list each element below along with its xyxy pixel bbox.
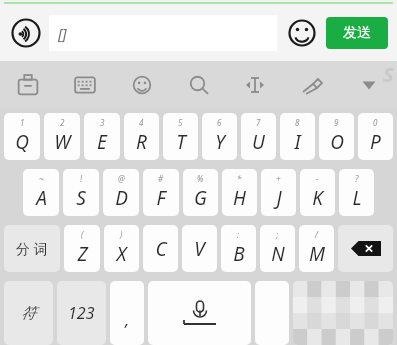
staticText: O bbox=[330, 129, 344, 155]
staticText: K bbox=[312, 185, 323, 211]
staticText: S bbox=[383, 61, 394, 88]
staticText: F bbox=[156, 185, 166, 211]
button[interactable]: Emoji bbox=[285, 16, 319, 50]
button[interactable]: Voice input bbox=[9, 16, 43, 50]
button[interactable]: Collapse keyboard bbox=[347, 65, 391, 105]
button[interactable]: Search bbox=[177, 65, 221, 105]
button[interactable]: / bbox=[299, 225, 334, 272]
staticText: 3 bbox=[100, 117, 105, 128]
staticText: 1 bbox=[20, 117, 25, 128]
staticText: 7 bbox=[256, 117, 261, 128]
button[interactable]: 8 bbox=[280, 113, 315, 160]
button[interactable]: : bbox=[221, 225, 256, 272]
button[interactable]: 9 bbox=[319, 113, 354, 160]
button[interactable]: ! bbox=[63, 169, 99, 216]
staticText: 9 bbox=[334, 117, 339, 128]
staticText: ; bbox=[276, 229, 279, 240]
button[interactable]: % bbox=[183, 169, 218, 216]
button[interactable]: C bbox=[143, 225, 178, 272]
staticText: ) bbox=[120, 229, 123, 240]
button[interactable]: Theme bbox=[290, 65, 334, 105]
button[interactable]: Backspace bbox=[338, 225, 393, 272]
button[interactable]: - bbox=[300, 169, 335, 216]
staticText: B bbox=[233, 241, 245, 267]
button[interactable]: 5 bbox=[163, 113, 198, 160]
staticText: Q bbox=[15, 129, 29, 155]
button[interactable]: Emoji panel bbox=[120, 65, 164, 105]
staticText: ( bbox=[81, 229, 84, 240]
staticText: W bbox=[54, 129, 71, 155]
button[interactable]: 6 bbox=[202, 113, 237, 160]
staticText: G bbox=[194, 185, 207, 211]
staticText: I bbox=[294, 129, 301, 155]
button[interactable]: ) bbox=[104, 225, 139, 272]
staticText: V bbox=[194, 236, 205, 262]
button[interactable]: V bbox=[182, 225, 217, 272]
staticText: 分 词 bbox=[16, 239, 48, 258]
staticText: R bbox=[136, 129, 147, 155]
staticText: 发送 bbox=[343, 24, 371, 42]
staticText: L bbox=[352, 185, 362, 211]
staticText: A bbox=[36, 185, 47, 211]
button[interactable]: 123 bbox=[57, 281, 106, 345]
button[interactable]: 0 bbox=[358, 113, 393, 160]
staticText: 2 bbox=[60, 117, 65, 128]
staticText: C bbox=[155, 236, 167, 262]
button[interactable]: ~ bbox=[23, 169, 59, 216]
staticText: 4 bbox=[139, 117, 144, 128]
staticText: ~ bbox=[39, 173, 44, 184]
staticText: J bbox=[276, 185, 282, 211]
staticText: % bbox=[197, 173, 204, 184]
staticText: : bbox=[237, 229, 240, 240]
staticText: 0 bbox=[373, 117, 378, 128]
staticText: Z bbox=[77, 241, 88, 267]
staticText: - bbox=[316, 173, 319, 184]
button[interactable]: Space, voice input bbox=[148, 281, 251, 345]
staticText: U bbox=[252, 129, 265, 155]
button[interactable]: , bbox=[110, 281, 144, 345]
button[interactable]: ; bbox=[260, 225, 295, 272]
staticText: 5 bbox=[178, 117, 183, 128]
button[interactable]: + bbox=[261, 169, 296, 216]
staticText: , bbox=[125, 308, 130, 331]
staticText: 8 bbox=[295, 117, 300, 128]
button[interactable]: [] bbox=[49, 15, 277, 51]
staticText: / bbox=[315, 229, 318, 240]
staticText: T bbox=[176, 129, 186, 155]
staticText: 123 bbox=[68, 302, 95, 324]
button[interactable]: 2 bbox=[44, 113, 80, 160]
staticText: 符 bbox=[21, 304, 36, 323]
button[interactable]: Keyboard bbox=[63, 65, 107, 105]
button[interactable]: 1 bbox=[4, 113, 40, 160]
button[interactable]: 分 词 bbox=[4, 225, 60, 272]
staticText: X bbox=[116, 241, 127, 267]
button[interactable]: Move cursor bbox=[233, 65, 277, 105]
button[interactable]: Toolbox bbox=[6, 65, 50, 105]
button[interactable]: 4 bbox=[124, 113, 159, 160]
staticText: ? bbox=[355, 173, 359, 184]
staticText: # bbox=[158, 173, 164, 184]
staticText: + bbox=[276, 173, 281, 184]
button[interactable]: 7 bbox=[241, 113, 276, 160]
staticText: N bbox=[271, 241, 285, 267]
staticText: S bbox=[76, 185, 86, 211]
button[interactable]: ( bbox=[64, 225, 100, 272]
staticText: M bbox=[309, 241, 325, 267]
staticText: P bbox=[370, 129, 381, 155]
staticText: H bbox=[233, 185, 246, 211]
button[interactable] bbox=[293, 281, 393, 345]
staticText: E bbox=[97, 129, 107, 155]
staticText: * bbox=[237, 173, 242, 184]
staticText: @ bbox=[118, 173, 125, 184]
button[interactable]: ? bbox=[339, 169, 374, 216]
button[interactable]: # bbox=[143, 169, 179, 216]
button[interactable]: 发送 bbox=[326, 17, 388, 49]
button[interactable]: 符 bbox=[4, 281, 53, 345]
staticText: [] bbox=[58, 23, 67, 43]
button[interactable]: * bbox=[222, 169, 257, 216]
button[interactable]: 3 bbox=[84, 113, 120, 160]
staticText: ! bbox=[80, 173, 83, 184]
button[interactable]: @ bbox=[103, 169, 139, 216]
button[interactable] bbox=[255, 281, 289, 345]
staticText: 6 bbox=[217, 117, 222, 128]
